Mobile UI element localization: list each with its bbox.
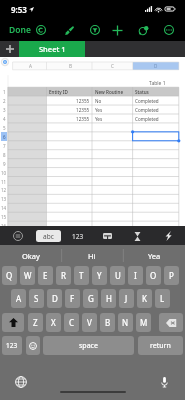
button[interactable]: Done: [9, 24, 31, 36]
button[interactable]: D: [133, 62, 179, 70]
staticText: A: [16, 293, 22, 304]
staticText: Hi: [88, 251, 96, 261]
staticText: C: [111, 63, 114, 69]
button[interactable]: 123: [2, 336, 22, 355]
button[interactable]: Undo: [33, 22, 49, 38]
staticText: 12355: [76, 116, 90, 122]
staticText: D: [154, 63, 158, 69]
button[interactable]: K: [137, 289, 152, 308]
staticText: 123: [72, 232, 84, 241]
staticText: U: [115, 270, 121, 281]
staticText: O: [150, 270, 157, 281]
staticText: Sheet 1: [39, 44, 66, 54]
button[interactable]: return: [138, 336, 183, 355]
button[interactable]: abc: [36, 230, 61, 242]
button[interactable]: B: [47, 62, 93, 70]
button[interactable]: More options: [161, 22, 177, 38]
button[interactable]: Formula: [161, 229, 175, 243]
staticText: Status: [135, 89, 149, 95]
button[interactable]: Duration: [130, 229, 144, 243]
button[interactable]: B: [100, 313, 115, 332]
button[interactable]: C: [64, 313, 79, 332]
button[interactable]: T: [74, 266, 89, 285]
button[interactable]: Okay: [0, 245, 61, 266]
button[interactable]: M: [136, 313, 151, 332]
button[interactable]: Add: [109, 22, 125, 38]
staticText: B: [105, 317, 111, 328]
button[interactable]: Y: [92, 266, 107, 285]
button[interactable]: S: [29, 289, 44, 308]
staticText: G: [88, 293, 94, 304]
button[interactable]: N: [118, 313, 133, 332]
button[interactable]: U: [110, 266, 125, 285]
button[interactable]: Hi: [61, 245, 123, 266]
button[interactable]: Date and time: [100, 229, 114, 243]
staticText: 9:53: [11, 4, 27, 15]
button[interactable]: R: [56, 266, 71, 285]
button[interactable]: O: [146, 266, 161, 285]
staticText: 4: [3, 116, 6, 122]
staticText: 123: [6, 341, 18, 350]
button[interactable]: W: [20, 266, 35, 285]
staticText: V: [87, 317, 92, 328]
button[interactable]: space: [43, 336, 134, 355]
button[interactable]: Collaborate: [135, 22, 151, 38]
staticText: M: [140, 317, 148, 328]
staticText: 2: [3, 98, 6, 104]
button[interactable]: Insert: [87, 22, 103, 38]
button[interactable]: H: [101, 289, 116, 308]
staticText: Yea: [148, 251, 161, 261]
button[interactable]: C: [92, 62, 133, 70]
button[interactable]: A: [13, 62, 47, 70]
button[interactable]: Emoji: [26, 336, 40, 355]
button[interactable]: Cell actions: [11, 229, 25, 243]
staticText: return: [150, 341, 171, 351]
button[interactable]: Add sheet: [0, 41, 19, 57]
staticText: 10: [1, 170, 7, 176]
button[interactable]: J: [119, 289, 134, 308]
button[interactable]: F: [65, 289, 80, 308]
button[interactable]: L: [155, 289, 170, 308]
button[interactable]: E: [38, 266, 53, 285]
button[interactable]: G: [83, 289, 98, 308]
staticText: 9: [3, 161, 6, 167]
button[interactable]: X: [46, 313, 61, 332]
staticText: 12355: [76, 107, 90, 113]
staticText: I: [134, 270, 137, 281]
staticText: B: [69, 63, 72, 69]
staticText: Yes: [95, 107, 103, 113]
staticText: Entity ID: [49, 89, 68, 95]
button[interactable]: Format: [60, 22, 76, 38]
button[interactable]: 123: [68, 230, 87, 242]
button[interactable]: Switch keyboard: [13, 374, 28, 389]
button[interactable]: A: [11, 289, 26, 308]
button[interactable]: Yea: [123, 245, 185, 266]
button[interactable]: Select all: [1, 58, 9, 66]
button[interactable]: P: [164, 266, 179, 285]
staticText: R: [61, 270, 66, 281]
button[interactable]: Backspace: [159, 313, 183, 332]
staticText: F: [70, 293, 75, 304]
button[interactable]: D: [47, 289, 62, 308]
staticText: K: [142, 293, 147, 304]
staticText: Table 1: [149, 80, 166, 87]
button[interactable]: Sheet 1: [19, 41, 85, 57]
button[interactable]: Dictate: [157, 374, 172, 389]
staticText: Okay: [22, 251, 40, 261]
button[interactable]: Shift: [2, 313, 24, 332]
staticText: L: [160, 293, 165, 304]
staticText: 13: [1, 196, 7, 202]
button[interactable]: Z: [28, 313, 43, 332]
staticText: Y: [97, 270, 102, 281]
staticText: 12: [1, 187, 7, 193]
staticText: New Routine: [95, 89, 124, 95]
staticText: C: [69, 317, 75, 328]
staticText: 8: [3, 152, 6, 158]
button[interactable]: Q: [2, 266, 17, 285]
button[interactable]: I: [128, 266, 143, 285]
staticText: 6: [3, 134, 6, 140]
staticText: N: [122, 317, 129, 328]
staticText: space: [79, 341, 98, 351]
staticText: W: [24, 270, 32, 281]
button[interactable]: V: [82, 313, 97, 332]
